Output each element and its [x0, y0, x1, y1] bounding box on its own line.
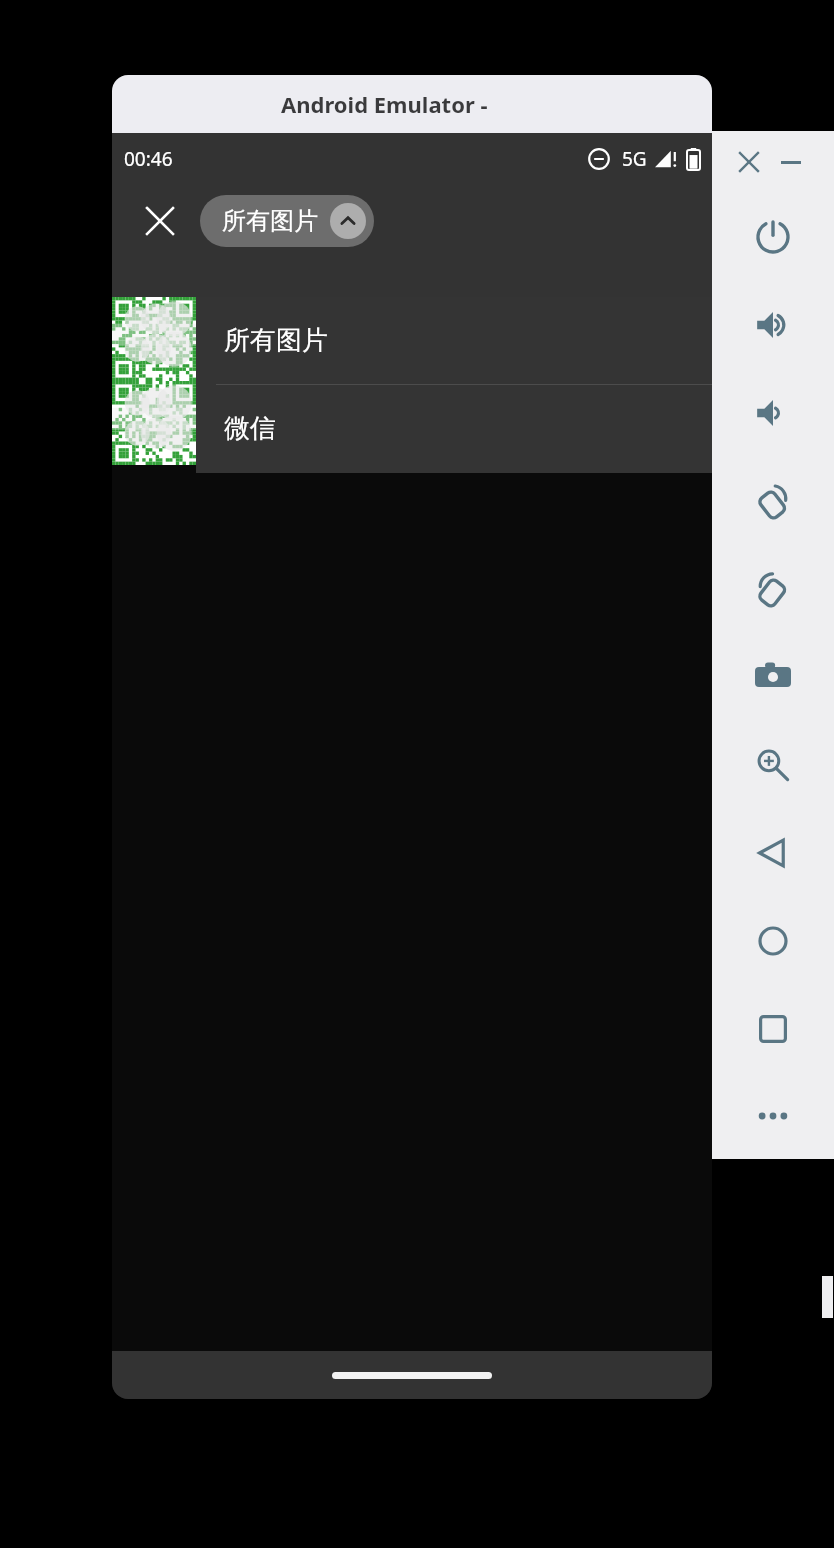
- button[interactable]: More: [712, 1073, 834, 1159]
- staticText: 所有图片: [222, 206, 318, 236]
- button[interactable]: Photo: [112, 297, 196, 381]
- staticText: 微信: [224, 412, 276, 445]
- button[interactable]: Rotate left: [712, 457, 834, 545]
- button[interactable]: Minimize: [772, 143, 810, 181]
- button[interactable]: Take screenshot: [712, 633, 834, 721]
- button[interactable]: Home: [712, 897, 834, 985]
- button[interactable]: 微信: [196, 385, 712, 472]
- staticText: 所有图片: [224, 324, 328, 357]
- button[interactable]: Overview: [712, 985, 834, 1073]
- staticText: 00:46: [124, 146, 173, 172]
- button[interactable]: 所有图片: [196, 297, 712, 384]
- button[interactable]: Photo: [112, 381, 196, 465]
- button[interactable]: Volume up: [712, 281, 834, 369]
- button[interactable]: Close emulator: [730, 143, 768, 181]
- staticText: 5G: [622, 146, 647, 172]
- button[interactable]: Back: [712, 809, 834, 897]
- button[interactable]: Close: [132, 193, 188, 249]
- button[interactable]: Zoom: [712, 721, 834, 809]
- button[interactable]: Rotate right: [712, 545, 834, 633]
- staticText: Android Emulator -: [281, 89, 488, 119]
- button[interactable]: Volume down: [712, 369, 834, 457]
- button[interactable]: 所有图片: [200, 195, 374, 247]
- button[interactable]: Power: [712, 193, 834, 281]
